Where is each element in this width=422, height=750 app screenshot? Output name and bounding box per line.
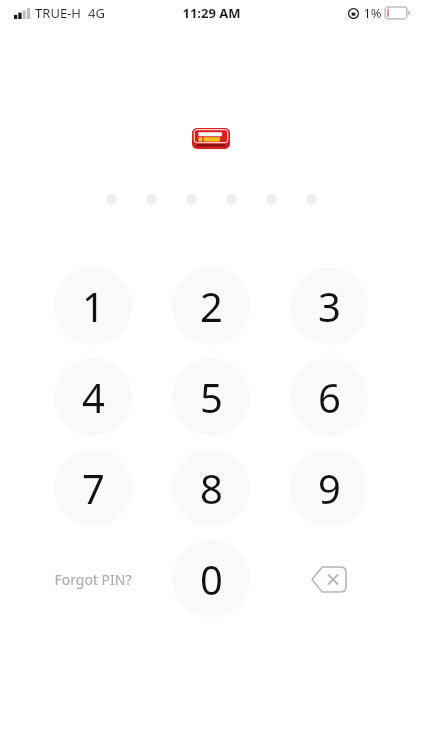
button[interactable]: 6 xyxy=(290,358,368,436)
button[interactable]: 3 xyxy=(290,267,368,345)
staticText: Forgot PIN? xyxy=(54,570,132,589)
staticText: 11:29 AM xyxy=(182,4,241,22)
staticText: 2 xyxy=(200,279,223,333)
staticText: 0 xyxy=(200,552,223,606)
staticText: 7 xyxy=(82,461,105,515)
staticText: 9 xyxy=(318,461,341,515)
staticText: 5 xyxy=(200,370,223,424)
staticText: 1% xyxy=(363,4,382,22)
button[interactable]: 0 xyxy=(172,540,250,618)
staticText: TRUE-H xyxy=(35,4,81,22)
staticText: 8 xyxy=(200,461,223,515)
staticText: 1 xyxy=(82,279,105,333)
staticText: 6 xyxy=(318,370,341,424)
button[interactable]: 9 xyxy=(290,449,368,527)
button[interactable]: 4 xyxy=(54,358,132,436)
button[interactable]: 5 xyxy=(172,358,250,436)
button[interactable]: 1 xyxy=(54,267,132,345)
button[interactable]: 8 xyxy=(172,449,250,527)
staticText: 3 xyxy=(318,279,341,333)
button[interactable]: Delete xyxy=(290,540,368,618)
button[interactable]: Forgot PIN? xyxy=(54,540,132,618)
button[interactable]: 2 xyxy=(172,267,250,345)
staticText: 4G xyxy=(88,4,105,22)
staticText: 4 xyxy=(82,370,105,424)
button[interactable]: 7 xyxy=(54,449,132,527)
